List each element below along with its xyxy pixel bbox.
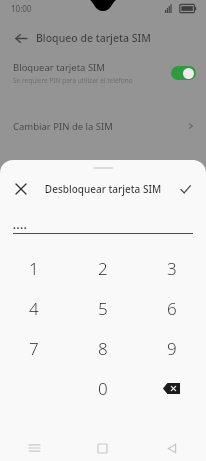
- button[interactable]: PIN entry field: [13, 220, 193, 234]
- button[interactable]: Close: [11, 179, 31, 199]
- button[interactable]: 5: [68, 288, 137, 328]
- button[interactable]: 9: [137, 328, 206, 368]
- staticText: 3: [167, 257, 177, 280]
- staticText: Bloqueo de tarjeta SIM: [36, 31, 151, 45]
- staticText: 2: [98, 257, 108, 280]
- button[interactable]: 4: [0, 288, 68, 328]
- button[interactable]: 6: [137, 288, 206, 328]
- button[interactable]: 3: [137, 248, 206, 288]
- button[interactable]: Backspace: [137, 368, 206, 408]
- staticText: Se requiere PIN para utilizar el teléfon…: [13, 76, 133, 85]
- button[interactable]: Cambiar PIN de la SIM: [0, 112, 206, 140]
- staticText: 7: [29, 337, 39, 360]
- staticText: 9: [167, 337, 177, 360]
- button[interactable]: Recents: [0, 435, 68, 461]
- staticText: 4: [29, 297, 39, 320]
- button[interactable]: Bloquear tarjeta SIM toggle: [171, 66, 196, 80]
- button[interactable]: Back: [10, 27, 32, 49]
- staticText: 5: [98, 297, 108, 320]
- staticText: Desbloquear tarjeta SIM: [31, 182, 175, 196]
- button[interactable]: Bloquear tarjeta SIM: [0, 56, 206, 90]
- staticText: 8: [98, 337, 108, 360]
- button[interactable]: 7: [0, 328, 68, 368]
- staticText: 6: [167, 297, 177, 320]
- button[interactable]: 2: [68, 248, 137, 288]
- staticText: 1: [29, 257, 39, 280]
- button[interactable]: 0: [68, 368, 137, 408]
- staticText: 10:00: [11, 3, 32, 14]
- button[interactable]: 1: [0, 248, 68, 288]
- staticText: Cambiar PIN de la SIM: [13, 120, 187, 133]
- staticText: 0: [98, 377, 108, 400]
- button[interactable]: Confirm: [175, 179, 195, 199]
- button[interactable]: 8: [68, 328, 137, 368]
- button[interactable]: Back: [137, 435, 206, 461]
- button[interactable]: Home: [68, 435, 137, 461]
- staticText: Bloquear tarjeta SIM: [13, 61, 105, 74]
